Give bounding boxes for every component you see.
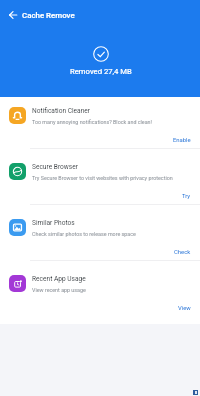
button[interactable]: Back (4, 6, 21, 23)
button[interactable]: Try (173, 191, 200, 202)
staticText: Removed 27,4 MB (70, 67, 132, 76)
staticText: Cache Remove (22, 11, 75, 20)
staticText: View (178, 305, 191, 312)
staticText: Similar Photos (32, 219, 75, 227)
staticText: Try Secure Browser to visit websites wit… (32, 175, 173, 181)
staticText: Enable (173, 137, 191, 144)
staticText: Check (174, 249, 191, 256)
button[interactable]: Similar Photos (0, 205, 200, 261)
button[interactable]: View (169, 303, 200, 314)
staticText: Too many annoying notifications? Block a… (32, 119, 152, 125)
button[interactable]: Enable (164, 135, 200, 146)
staticText: Recent App Usage (32, 275, 86, 283)
button[interactable]: Recent App Usage (0, 261, 200, 317)
button[interactable]: Notification Cleaner (0, 93, 200, 149)
staticText: Notification Cleaner (32, 107, 91, 115)
staticText: View recent app usage (32, 287, 86, 293)
staticText: Check similar photos to release more spa… (32, 231, 136, 237)
staticText: Secure Browser (32, 163, 78, 171)
staticText: Try (182, 193, 191, 200)
button[interactable]: Secure Browser (0, 149, 200, 205)
button[interactable]: Check (165, 247, 200, 258)
